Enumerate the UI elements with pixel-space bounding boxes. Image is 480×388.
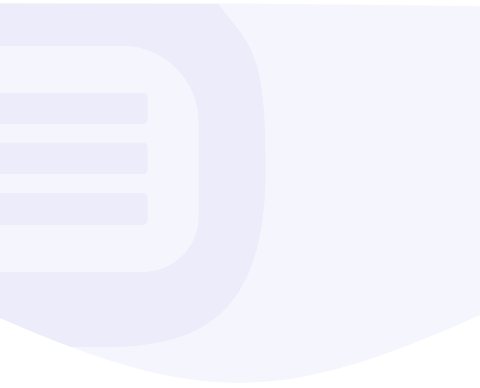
other: Brand watermark background [0, 0, 480, 388]
